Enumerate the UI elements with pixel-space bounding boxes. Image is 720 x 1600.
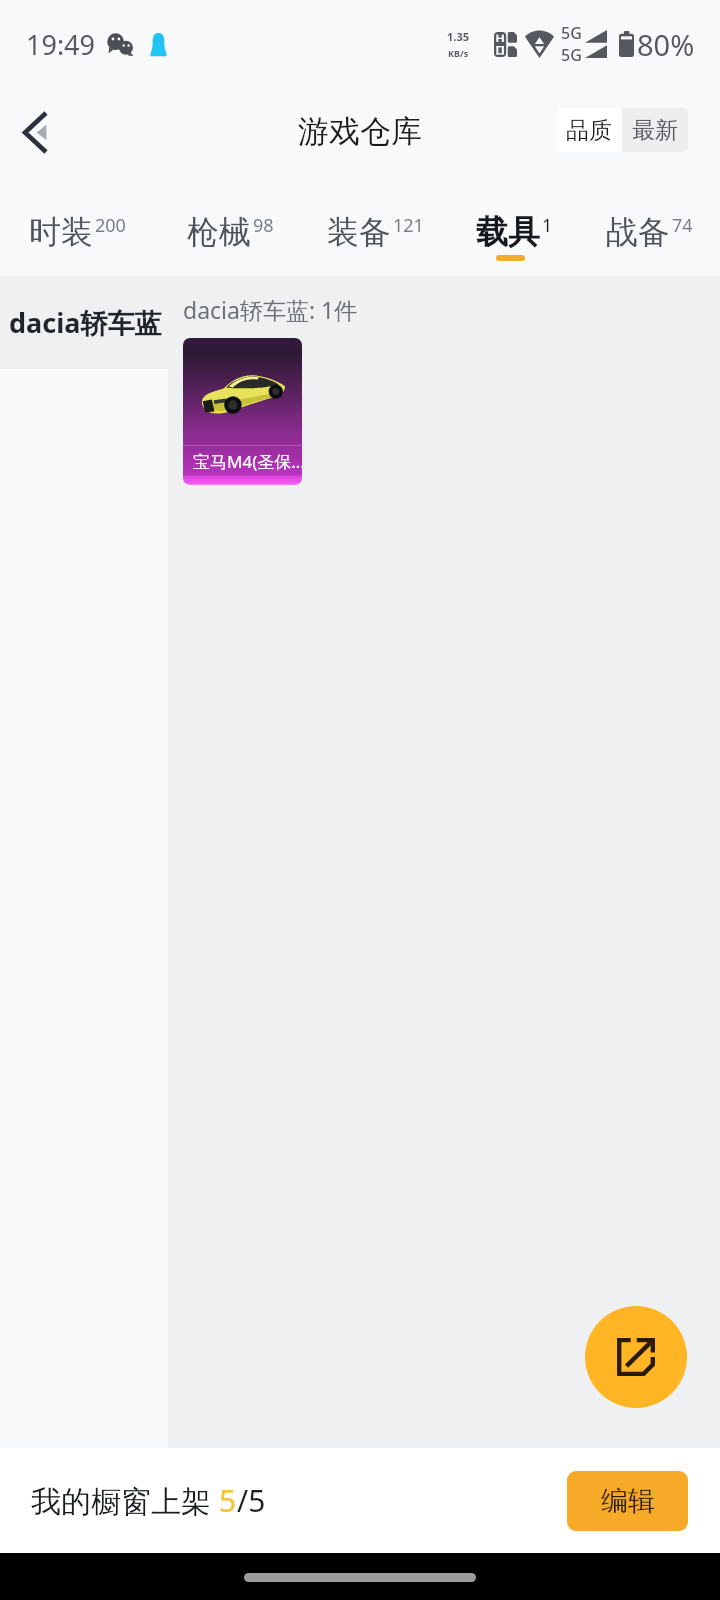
staticText: KB/s [448, 47, 469, 59]
button[interactable]: 枪械 [179, 180, 282, 276]
staticText: 战备 [606, 212, 670, 252]
staticText: 200 [95, 213, 126, 238]
staticText: 时装 [29, 212, 93, 252]
button[interactable]: 时装 [21, 180, 134, 276]
staticText: 19:49 [26, 26, 96, 63]
staticText: /5 [237, 1480, 266, 1521]
staticText: 1 [542, 213, 553, 238]
button[interactable]: 最新 [622, 108, 688, 152]
staticText: dacia轿车蓝 [9, 304, 162, 341]
button[interactable]: Open in new window [585, 1306, 687, 1408]
staticText: 80% [637, 25, 695, 64]
staticText: 编辑 [601, 1484, 655, 1518]
staticText: 品质 [566, 116, 612, 145]
staticText: 宝马M4(圣保… [193, 450, 302, 473]
button[interactable]: 宝马M4(圣保… [183, 338, 302, 485]
staticText: 游戏仓库 [298, 112, 422, 151]
staticText: 枪械 [187, 212, 251, 252]
staticText: 最新 [632, 116, 678, 145]
button[interactable]: 战备 [598, 180, 701, 276]
button[interactable]: 品质 [556, 108, 622, 152]
button[interactable]: 编辑 [567, 1471, 688, 1531]
button[interactable]: 装备 [319, 180, 432, 276]
staticText: 98 [253, 213, 274, 238]
staticText: dacia轿车蓝: 1件 [183, 294, 358, 325]
staticText: 5G [561, 44, 582, 66]
staticText: 5 [219, 1480, 237, 1521]
staticText: 1.35 [447, 29, 469, 44]
staticText: 74 [672, 213, 693, 238]
button[interactable]: Back [4, 103, 66, 165]
button[interactable]: 载具 [468, 180, 561, 276]
staticText: 121 [393, 213, 424, 238]
staticText: 载具 [476, 212, 540, 252]
button[interactable]: dacia轿车蓝 [0, 276, 168, 369]
staticText: 5G [561, 22, 582, 44]
staticText: 我的橱窗上架 [31, 1480, 219, 1521]
staticText: 装备 [327, 212, 391, 252]
